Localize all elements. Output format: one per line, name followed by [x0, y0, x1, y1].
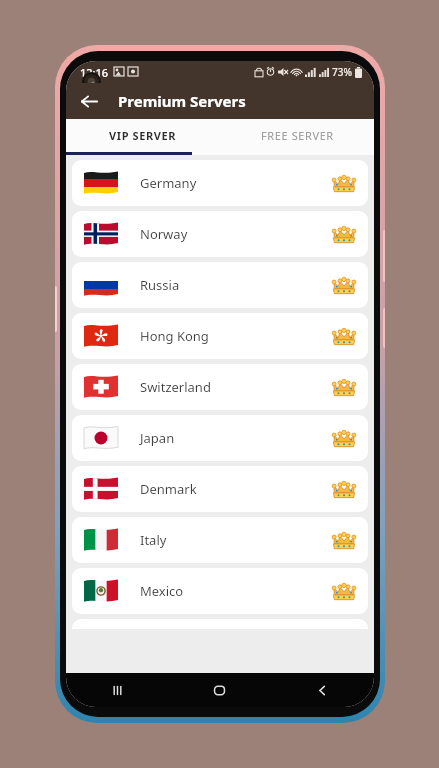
button[interactable]: Home — [168, 673, 271, 707]
button[interactable]: Back — [271, 673, 374, 707]
button[interactable]: Japan — [72, 415, 368, 461]
button[interactable]: Back — [72, 84, 106, 118]
staticText: Switzerland — [140, 378, 211, 396]
button[interactable]: Switzerland — [72, 364, 368, 410]
staticText: Denmark — [140, 480, 197, 498]
staticText: Hong Kong — [140, 327, 209, 345]
button[interactable]: VIP SERVER — [66, 119, 220, 152]
staticText: VIP SERVER — [109, 128, 177, 143]
button[interactable]: FREE SERVER — [220, 119, 374, 152]
button[interactable]: Russia — [72, 262, 368, 308]
staticText: Italy — [140, 531, 167, 549]
button[interactable]: Italy — [72, 517, 368, 563]
staticText: Norway — [140, 225, 188, 243]
button[interactable]: Norway — [72, 211, 368, 257]
button[interactable]: Recent apps — [66, 673, 168, 707]
button[interactable]: Denmark — [72, 466, 368, 512]
button[interactable]: Germany — [72, 160, 368, 206]
button[interactable]: Mexico — [72, 568, 368, 614]
staticText: 12:16 — [80, 65, 109, 80]
staticText: Premium Servers — [118, 91, 246, 111]
staticText: 73% — [332, 65, 352, 79]
staticText: Russia — [140, 276, 180, 294]
staticText: FREE SERVER — [261, 128, 334, 143]
staticText: Germany — [140, 174, 197, 192]
staticText: Japan — [140, 429, 175, 447]
button[interactable]: Hong Kong — [72, 313, 368, 359]
staticText: Mexico — [140, 582, 184, 600]
